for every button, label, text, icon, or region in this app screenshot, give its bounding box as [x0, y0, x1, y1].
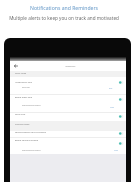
staticText: 5 min: [114, 149, 118, 151]
button[interactable]: [10, 112, 126, 121]
button[interactable]: [10, 131, 126, 138]
staticText: 2 min: [110, 106, 114, 108]
button[interactable]: Back: [10, 61, 21, 71]
staticText: Social Chat: [15, 113, 26, 116]
staticText: Silent Tone: [22, 86, 30, 88]
button[interactable]: [10, 76, 126, 94]
staticText: EDIT: [109, 87, 113, 89]
button[interactable]: [10, 94, 126, 112]
staticText: Notifications and Reminders: [30, 5, 98, 12]
button[interactable]: [10, 137, 126, 154]
button[interactable]: Toggle: [116, 113, 125, 120]
staticText: Setting Floating Alerts Procedure: [15, 131, 46, 134]
staticText: Schedule Mode: [15, 123, 30, 126]
button[interactable]: Toggle: [116, 79, 125, 86]
staticText: How would alerts options?: [22, 149, 41, 151]
button[interactable]: Toggle: [116, 96, 125, 103]
staticText: Before Event Time: [15, 96, 33, 99]
button[interactable]: Toggle: [116, 130, 125, 137]
staticText: Multiple alerts to keep you on track and…: [9, 15, 119, 21]
staticText: Silent Mode: [15, 72, 27, 75]
button[interactable]: Toggle: [116, 140, 125, 147]
button[interactable]: Back: [10, 61, 126, 71]
staticText: Before Period Procedure: [15, 139, 39, 142]
staticText: How would alerts options?: [22, 104, 41, 106]
staticText: Notifications: [65, 65, 76, 67]
staticText: Notifications Tone: [15, 81, 32, 84]
